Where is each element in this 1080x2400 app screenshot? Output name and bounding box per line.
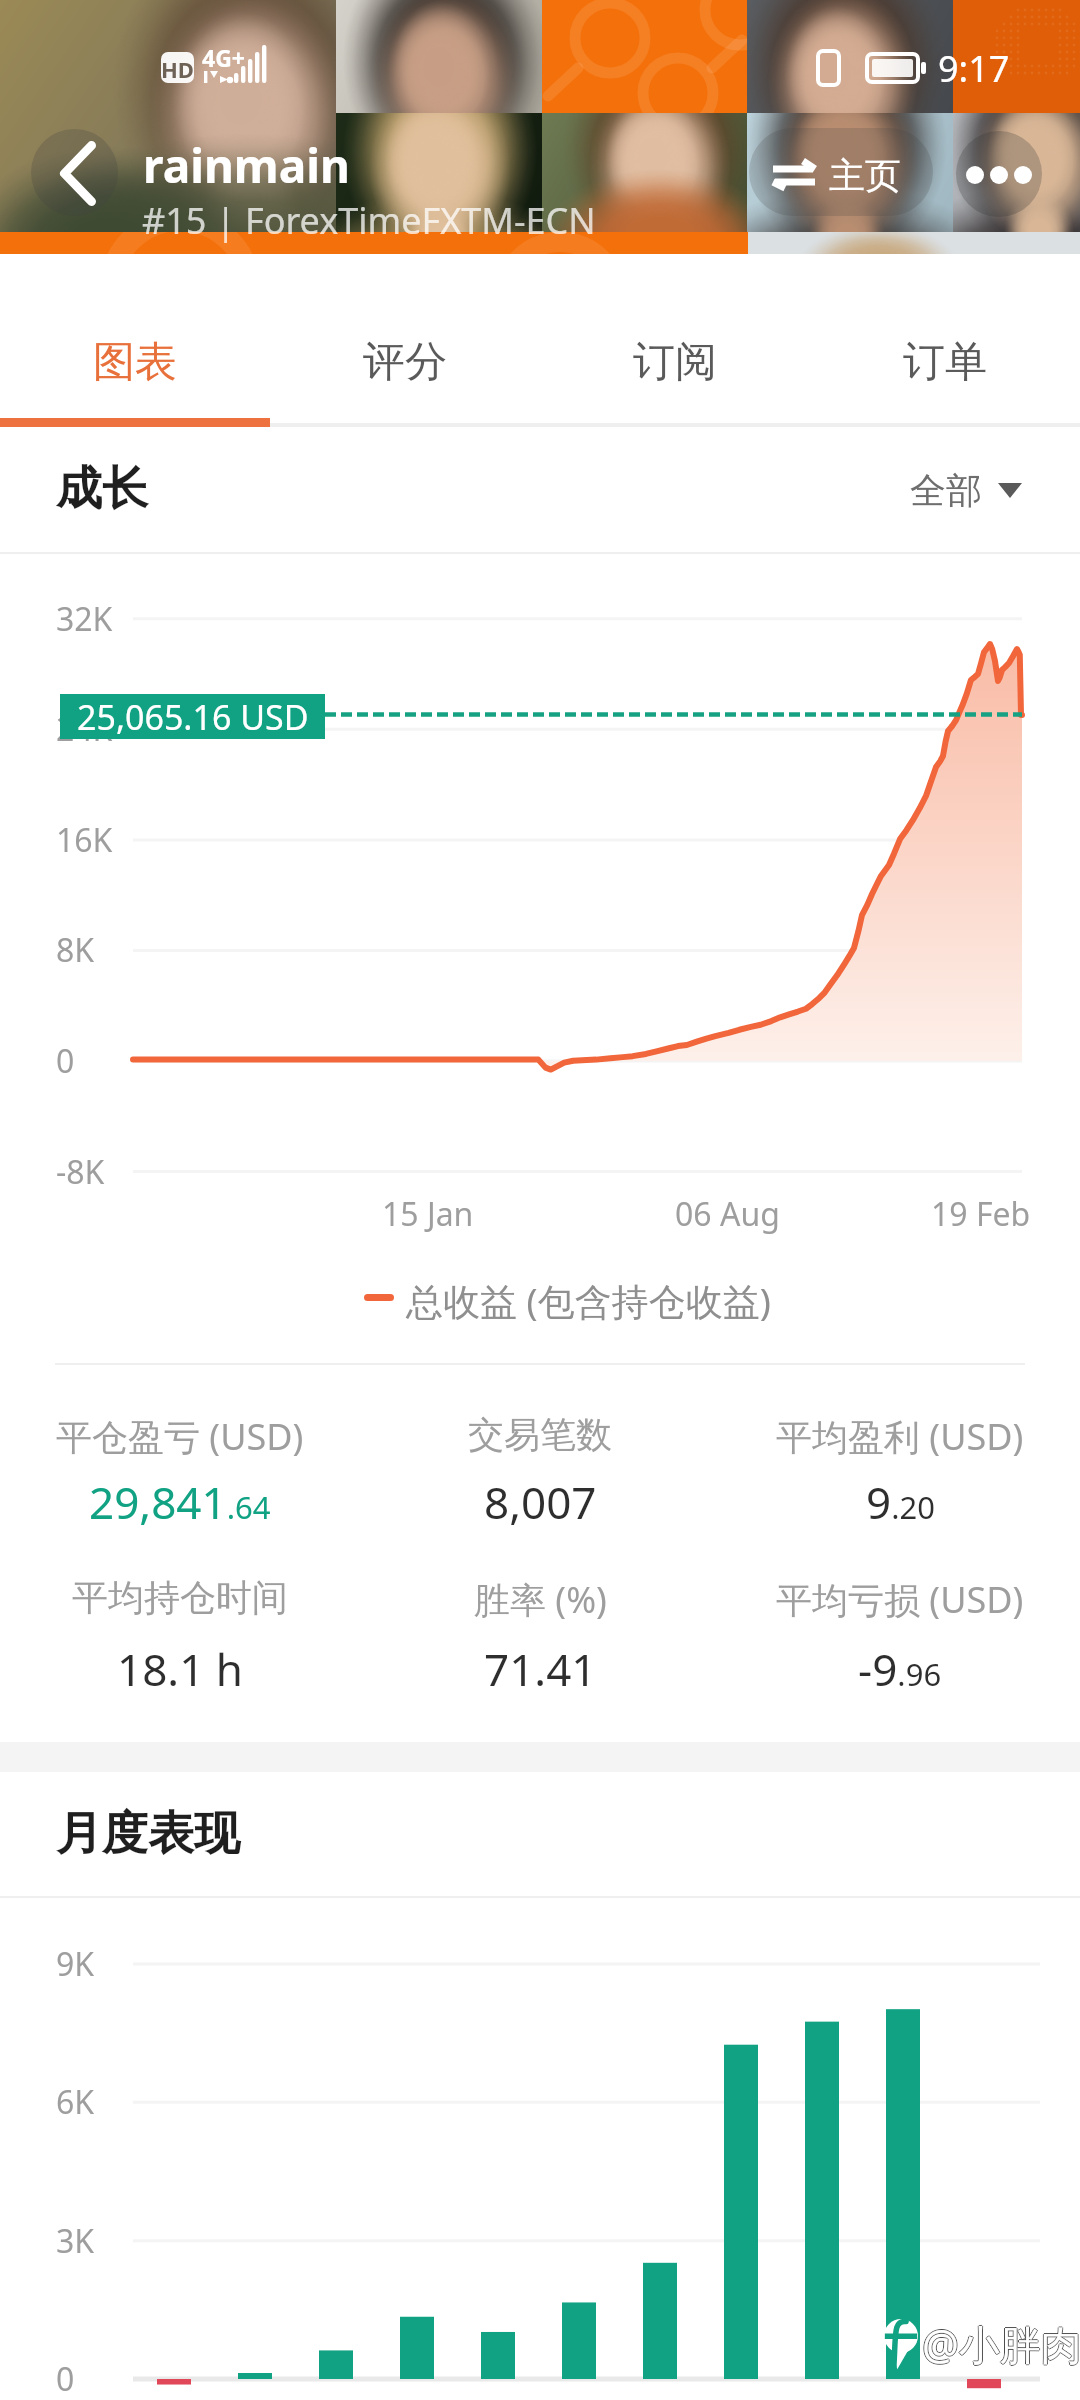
staticText: -9.96 xyxy=(858,1639,942,1699)
staticText: 06 Aug xyxy=(675,1192,780,1236)
staticText: 月度表现 xyxy=(56,1805,240,1863)
staticText: 成长 xyxy=(56,460,148,518)
staticText: 订阅 xyxy=(633,336,717,389)
staticText: 24K xyxy=(56,707,113,751)
staticText: 0 xyxy=(56,1039,75,1083)
staticText: 4G+ xyxy=(202,42,245,73)
staticText: HD xyxy=(161,54,194,84)
staticText: @小胖肉 xyxy=(922,2316,1080,2372)
staticText: 15 Jan xyxy=(382,1192,474,1236)
staticText: 3K xyxy=(56,2219,95,2263)
staticText: 8K xyxy=(56,928,95,972)
staticText: 9:17 xyxy=(938,44,1010,93)
button[interactable]: 订阅 xyxy=(540,254,810,427)
staticText: @小胖肉 xyxy=(923,2316,1080,2372)
staticText: 平均亏损 (USD) xyxy=(776,1575,1024,1624)
button[interactable]: Back xyxy=(31,129,118,216)
staticText: 胜率 (%) xyxy=(474,1575,607,1624)
button[interactable]: 全部 xyxy=(910,468,1022,513)
staticText: 主页 xyxy=(829,153,901,198)
staticText: 平均持仓时间 xyxy=(72,1575,288,1620)
staticText: 全部 xyxy=(910,468,982,513)
staticText: 6K xyxy=(56,2080,95,2124)
button[interactable]: 主页 xyxy=(749,128,933,216)
staticText: 平均盈利 (USD) xyxy=(776,1412,1024,1461)
staticText: 32K xyxy=(56,597,113,641)
button[interactable]: 订单 xyxy=(810,254,1080,427)
button[interactable]: 图表 xyxy=(0,254,270,427)
staticText: -8K xyxy=(56,1150,105,1194)
staticText: @小胖肉 xyxy=(922,2315,1080,2371)
staticText: #15 | ForexTimeFXTM-ECN xyxy=(142,196,596,245)
staticText: 25,065.16 USD xyxy=(77,694,309,739)
staticText: @小胖肉 xyxy=(921,2316,1080,2372)
staticText: 71.41 xyxy=(484,1639,597,1699)
button[interactable]: More options xyxy=(956,131,1042,217)
staticText: 订单 xyxy=(903,336,987,389)
staticText: 总收益 (包含持仓收益) xyxy=(406,1275,771,1326)
staticText: 评分 xyxy=(363,336,447,389)
staticText: 29,841.64 xyxy=(89,1472,271,1532)
staticText: 16K xyxy=(56,818,113,862)
staticText: 0 xyxy=(56,2357,75,2400)
staticText: 8,007 xyxy=(484,1472,597,1532)
button[interactable]: 评分 xyxy=(270,254,540,427)
staticText: 平仓盈亏 (USD) xyxy=(56,1412,304,1461)
staticText: 9.20 xyxy=(866,1472,935,1532)
staticText: 交易笔数 xyxy=(468,1412,612,1457)
staticText: 9K xyxy=(56,1942,95,1986)
staticText: 18.1 h xyxy=(117,1639,243,1699)
staticText: 图表 xyxy=(93,336,177,389)
staticText: @小胖肉 xyxy=(922,2317,1080,2373)
staticText: rainmain xyxy=(143,134,350,197)
staticText: 19 Feb xyxy=(931,1192,1031,1236)
